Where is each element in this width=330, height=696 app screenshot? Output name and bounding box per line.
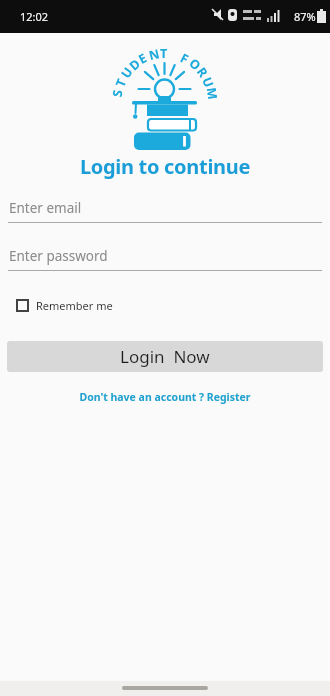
staticText: T (112, 76, 130, 89)
staticText: E (135, 49, 150, 68)
staticText: 12:02 (20, 9, 49, 24)
staticText: Remember me (36, 298, 113, 313)
staticText: Login to continue (0, 153, 330, 180)
staticText: Don't have an account ? Register (0, 390, 330, 404)
staticText: O (186, 55, 204, 74)
staticText: Enter email (9, 199, 82, 217)
staticText: D (126, 55, 144, 74)
staticText: T (160, 45, 168, 62)
staticText: Login Now (120, 345, 210, 368)
staticText: S (109, 89, 126, 98)
button[interactable]: Remember me (16, 298, 113, 313)
staticText: U (117, 63, 137, 81)
button[interactable]: Login Now (7, 341, 323, 372)
staticText: N (147, 45, 162, 64)
staticText: 87% (294, 9, 316, 24)
button[interactable]: Don't have an account ? Register (0, 390, 330, 404)
button[interactable]: Enter email (8, 196, 322, 223)
staticText: U (198, 75, 218, 90)
staticText: Enter password (9, 247, 108, 265)
staticText: M (203, 86, 221, 101)
button[interactable]: Enter password (8, 243, 322, 271)
staticText: R (193, 64, 212, 81)
staticText: F (177, 49, 191, 68)
